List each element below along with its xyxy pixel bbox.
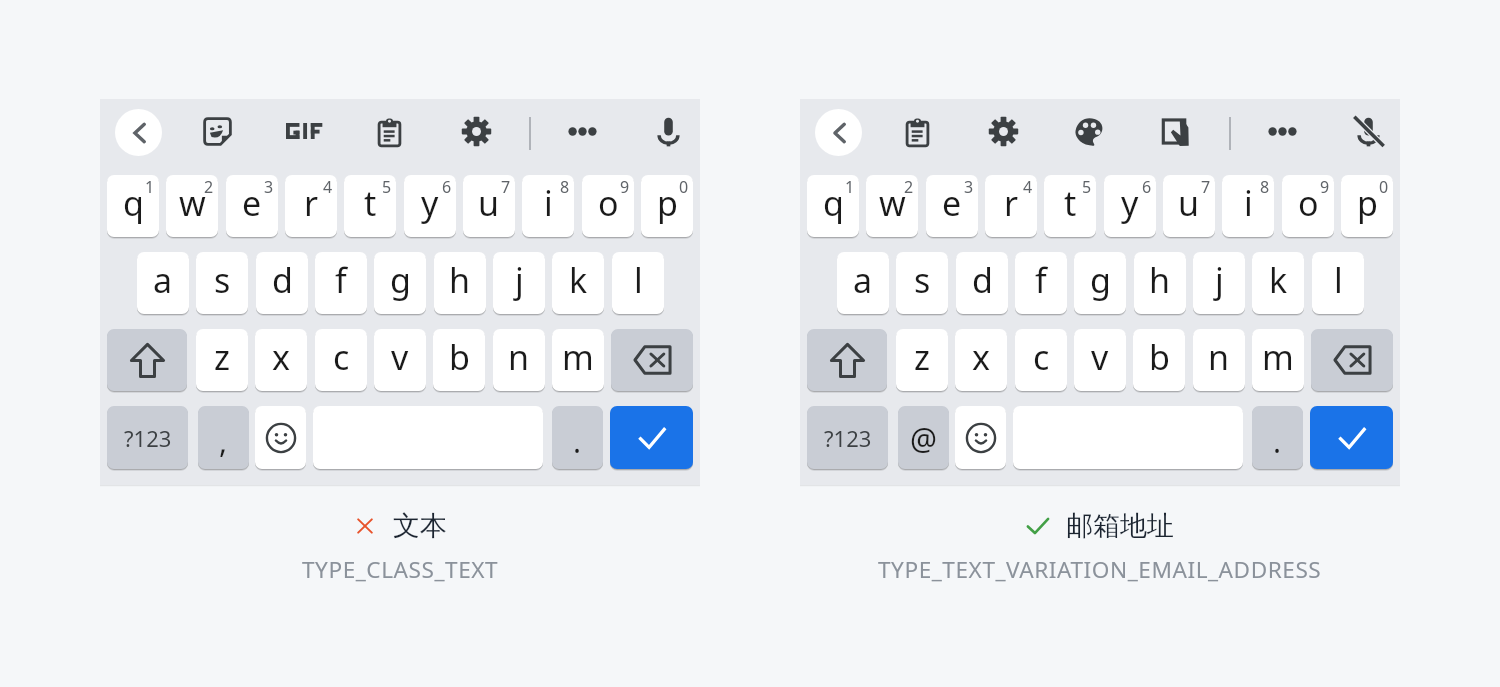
button[interactable]: q — [107, 175, 159, 237]
button[interactable]: More — [559, 108, 605, 154]
staticText: i — [544, 180, 553, 226]
button[interactable]: g — [1074, 252, 1126, 314]
button[interactable]: z — [196, 329, 248, 391]
button[interactable]: p — [1341, 175, 1393, 237]
button[interactable]: GIF — [280, 108, 326, 154]
button[interactable]: q — [807, 175, 859, 237]
button[interactable]: g — [374, 252, 426, 314]
button[interactable]: u — [463, 175, 515, 237]
button[interactable]: z — [896, 329, 948, 391]
staticText: 9 — [620, 176, 630, 198]
button[interactable]: u — [1163, 175, 1215, 237]
button[interactable]: o — [582, 175, 634, 237]
button[interactable]: m — [552, 329, 604, 391]
button[interactable]: h — [1134, 252, 1186, 314]
button[interactable]: . — [1252, 406, 1303, 469]
staticText: b — [449, 334, 470, 380]
button[interactable]: Enter — [1310, 406, 1393, 469]
button[interactable]: f — [1015, 252, 1067, 314]
button[interactable]: l — [1312, 252, 1364, 314]
staticText: y — [1121, 180, 1139, 226]
button[interactable]: Back — [115, 109, 162, 156]
staticText: e — [242, 180, 262, 226]
button[interactable]: v — [1074, 329, 1126, 391]
button[interactable]: k — [552, 252, 604, 314]
button[interactable]: Clipboard — [894, 108, 940, 154]
staticText: TYPE_TEXT_VARIATION_EMAIL_ADDRESS — [878, 554, 1322, 585]
button[interactable]: i — [522, 175, 574, 237]
button[interactable]: l — [612, 252, 664, 314]
button[interactable]: v — [374, 329, 426, 391]
button[interactable]: m — [1252, 329, 1304, 391]
button[interactable]: y — [404, 175, 456, 237]
button[interactable]: ?123 — [107, 406, 188, 469]
staticText: r — [1004, 180, 1019, 226]
button[interactable]: f — [315, 252, 367, 314]
button[interactable]: x — [255, 329, 307, 391]
staticText: z — [914, 334, 930, 380]
button[interactable]: Settings — [453, 108, 499, 154]
button[interactable]: Shift — [107, 329, 187, 391]
button[interactable]: w — [166, 175, 218, 237]
staticText: v — [391, 334, 409, 380]
button[interactable]: e — [226, 175, 278, 237]
button[interactable]: s — [896, 252, 948, 314]
button[interactable]: c — [315, 329, 367, 391]
button[interactable]: e — [926, 175, 978, 237]
button[interactable]: @ — [898, 406, 949, 469]
button[interactable]: i — [1222, 175, 1274, 237]
staticText: h — [449, 257, 471, 303]
staticText: v — [1091, 334, 1109, 380]
button[interactable]: b — [1133, 329, 1185, 391]
button[interactable]: Enter — [610, 406, 693, 469]
button[interactable]: , — [198, 406, 249, 469]
button[interactable]: s — [196, 252, 248, 314]
button[interactable]: w — [866, 175, 918, 237]
button[interactable]: a — [137, 252, 189, 314]
button[interactable]: . — [552, 406, 603, 469]
button[interactable]: Backspace — [611, 329, 693, 391]
button[interactable]: Backspace — [1311, 329, 1393, 391]
button[interactable]: Voice input disabled — [1345, 108, 1391, 154]
button[interactable]: r — [285, 175, 337, 237]
button[interactable]: b — [433, 329, 485, 391]
button[interactable]: Clipboard — [366, 108, 412, 154]
staticText: 8 — [560, 176, 570, 198]
button[interactable]: Emoji — [955, 406, 1006, 469]
button[interactable]: Voice input — [645, 108, 691, 154]
button[interactable]: k — [1252, 252, 1304, 314]
button[interactable]: r — [985, 175, 1037, 237]
button[interactable]: Shift — [807, 329, 887, 391]
button[interactable]: y — [1104, 175, 1156, 237]
button[interactable]: Resize — [1153, 108, 1199, 154]
staticText: 6 — [442, 176, 452, 198]
button[interactable]: Theme — [1066, 108, 1112, 154]
button[interactable]: t — [344, 175, 396, 237]
button[interactable]: d — [256, 252, 308, 314]
staticText: j — [1215, 257, 1224, 303]
button[interactable]: c — [1015, 329, 1067, 391]
button[interactable]: n — [1193, 329, 1245, 391]
button[interactable]: More — [1259, 108, 1305, 154]
button[interactable]: o — [1282, 175, 1334, 237]
staticText: c — [1033, 334, 1050, 380]
button[interactable]: ?123 — [807, 406, 888, 469]
button[interactable]: Stickers — [194, 108, 240, 154]
button[interactable]: p — [641, 175, 693, 237]
button[interactable]: x — [955, 329, 1007, 391]
button[interactable]: a — [837, 252, 889, 314]
staticText: 文本 — [393, 509, 447, 543]
button[interactable]: Back — [815, 109, 862, 156]
button[interactable]: j — [493, 252, 545, 314]
button[interactable]: t — [1044, 175, 1096, 237]
staticText: l — [634, 257, 643, 303]
button[interactable]: n — [493, 329, 545, 391]
staticText: 7 — [501, 176, 511, 198]
button[interactable]: Settings — [980, 108, 1026, 154]
button[interactable]: d — [956, 252, 1008, 314]
button[interactable]: h — [434, 252, 486, 314]
button[interactable]: Emoji — [255, 406, 306, 469]
button[interactable]: j — [1193, 252, 1245, 314]
